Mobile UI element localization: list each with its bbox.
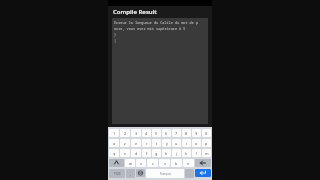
staticText: c xyxy=(152,161,154,166)
staticText: e xyxy=(135,141,138,146)
staticText: j xyxy=(176,151,177,156)
staticText: p xyxy=(205,141,208,146)
staticText: g xyxy=(155,151,158,156)
button[interactable]: k xyxy=(182,149,191,157)
staticText: Erreur la longueur du Calile du mot de p xyxy=(114,20,198,25)
button[interactable]: j xyxy=(172,149,181,157)
button[interactable]: r xyxy=(142,139,151,147)
staticText: x xyxy=(140,161,143,166)
button[interactable]: i xyxy=(182,139,191,147)
staticText: m xyxy=(205,151,209,156)
button[interactable]: 0 xyxy=(202,129,211,137)
staticText: 8 xyxy=(185,131,188,136)
button[interactable]: , xyxy=(126,169,135,178)
button[interactable]: f xyxy=(142,149,151,157)
staticText: y xyxy=(166,141,168,146)
button[interactable]: 8 xyxy=(182,129,191,137)
button[interactable]: g xyxy=(152,149,161,157)
staticText: 2 xyxy=(124,131,127,136)
button[interactable]: 9 xyxy=(192,129,201,137)
staticText: f xyxy=(146,151,148,156)
staticText: u xyxy=(175,141,178,146)
staticText: i xyxy=(186,141,187,146)
staticText: asse, vous avez mis supérieure à 5 xyxy=(114,26,186,31)
staticText: v xyxy=(164,161,166,166)
button[interactable]: v xyxy=(159,159,170,167)
button[interactable]: y xyxy=(162,139,171,147)
button[interactable]: w xyxy=(125,159,135,167)
button[interactable]: m xyxy=(202,149,211,157)
button[interactable]: u xyxy=(172,139,181,147)
staticText: r xyxy=(146,141,148,146)
button[interactable]: t xyxy=(152,139,161,147)
button[interactable]: ?123 xyxy=(109,169,125,178)
button[interactable]: 4 xyxy=(142,129,151,137)
button[interactable]: Français xyxy=(146,169,184,178)
button[interactable]: p xyxy=(202,139,211,147)
staticText: 9 xyxy=(195,131,198,136)
staticText: n xyxy=(187,161,190,166)
staticText: | xyxy=(114,38,117,43)
staticText: 1 xyxy=(113,131,116,136)
staticText: } xyxy=(114,32,117,37)
button[interactable]: o xyxy=(192,139,201,147)
staticText: Compile Result xyxy=(113,8,157,16)
button[interactable]: q xyxy=(109,149,119,157)
button[interactable]: c xyxy=(147,159,158,167)
staticText: 7 xyxy=(175,131,178,136)
button[interactable]: l xyxy=(192,149,201,157)
staticText: ?123 xyxy=(114,172,121,176)
staticText: a xyxy=(113,141,116,146)
staticText: w xyxy=(129,161,132,166)
staticText: h xyxy=(165,151,168,156)
staticText: b xyxy=(175,161,178,166)
button[interactable]: Backspace xyxy=(195,159,211,167)
button[interactable]: h xyxy=(162,149,171,157)
staticText: s xyxy=(124,151,126,156)
button[interactable]: z xyxy=(120,139,130,147)
button[interactable]: 1 xyxy=(109,129,119,137)
button[interactable]: Enter xyxy=(195,169,211,177)
button[interactable]: e xyxy=(131,139,141,147)
staticText: z xyxy=(124,141,126,146)
staticText: 3 xyxy=(135,131,138,136)
staticText: , xyxy=(130,171,132,176)
button[interactable]: n xyxy=(183,159,194,167)
button[interactable]: 6 xyxy=(162,129,171,137)
staticText: k xyxy=(185,151,188,156)
button[interactable]: 5 xyxy=(152,129,161,137)
staticText: l xyxy=(196,151,197,156)
button[interactable]: Compile Result xyxy=(108,6,212,18)
staticText: Français xyxy=(160,172,171,176)
button[interactable]: d xyxy=(131,149,141,157)
staticText: 0 xyxy=(205,131,208,136)
button[interactable]: Shift xyxy=(109,159,124,167)
staticText: q xyxy=(113,151,116,156)
staticText: . xyxy=(189,171,191,176)
staticText: 5 xyxy=(155,131,158,136)
staticText: d xyxy=(135,151,138,156)
button[interactable]: Erreur la longueur du Calile du mot de p xyxy=(112,18,208,124)
button[interactable]: s xyxy=(120,149,130,157)
button[interactable]: 2 xyxy=(120,129,130,137)
staticText: 6 xyxy=(165,131,168,136)
staticText: o xyxy=(195,141,198,146)
staticText: t xyxy=(156,141,158,146)
staticText: 4 xyxy=(145,131,148,136)
button[interactable]: Emoji xyxy=(136,169,145,177)
button[interactable]: a xyxy=(109,139,119,147)
button[interactable]: 7 xyxy=(172,129,181,137)
button[interactable]: b xyxy=(171,159,182,167)
button[interactable]: x xyxy=(136,159,146,167)
button[interactable]: 3 xyxy=(131,129,141,137)
